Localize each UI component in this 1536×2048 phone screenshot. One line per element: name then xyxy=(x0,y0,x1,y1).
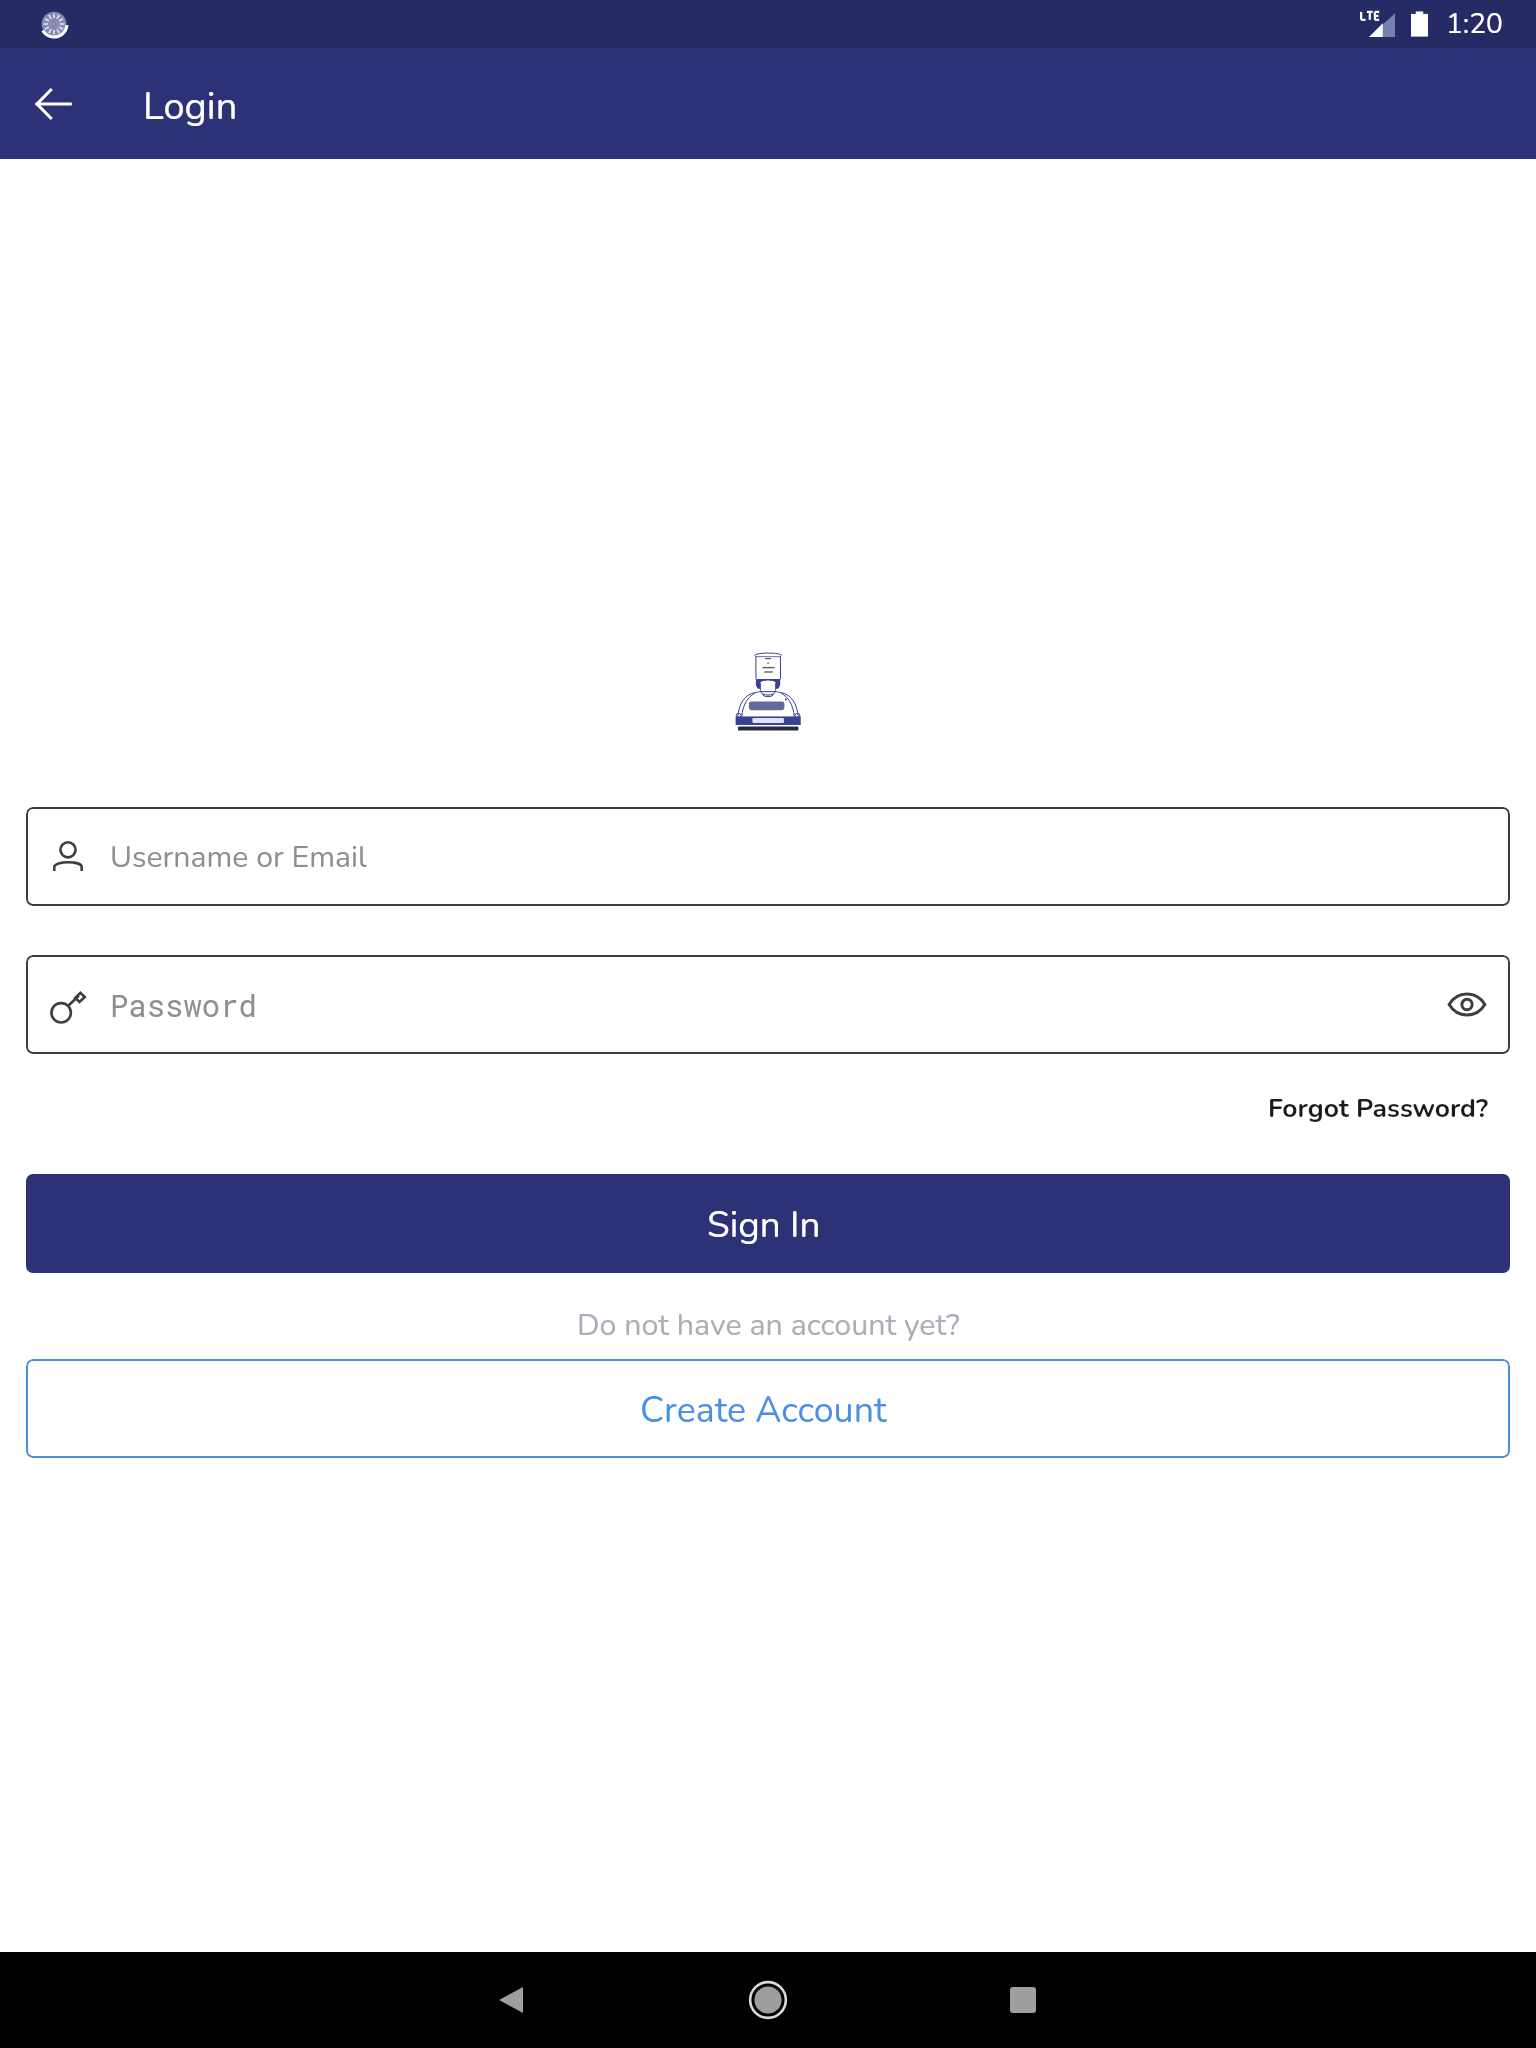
button[interactable]: Forgot Password? xyxy=(1260,1074,1497,1142)
button[interactable]: Sign In xyxy=(26,1174,1510,1273)
button[interactable]: Create Account xyxy=(26,1359,1510,1458)
staticText: Password xyxy=(110,985,257,1025)
staticText: Sign In xyxy=(707,1200,821,1250)
staticText: Login xyxy=(143,81,238,133)
button[interactable]: Recent apps xyxy=(975,1952,1071,2048)
button[interactable]: Show password xyxy=(1448,990,1486,1019)
button[interactable]: Username or Email xyxy=(26,807,1510,906)
button[interactable]: Back xyxy=(463,1952,559,2048)
staticText: Do not have an account yet? xyxy=(577,1304,960,1345)
button[interactable]: Back xyxy=(13,64,93,144)
staticText: Create Account xyxy=(640,1386,887,1435)
staticText: Forgot Password? xyxy=(1268,1090,1489,1126)
staticText: 1:20 xyxy=(1446,5,1503,43)
button[interactable]: Password xyxy=(26,955,1510,1054)
button[interactable]: Home xyxy=(720,1952,816,2048)
staticText: Username or Email xyxy=(110,836,367,877)
